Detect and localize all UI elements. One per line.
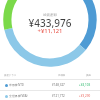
- staticText: ¥148,327: [52, 83, 65, 87]
- staticText: ¥433,976: [0, 16, 100, 30]
- staticText: 資産クラス: [4, 74, 17, 77]
- staticText: 米国株(VTI): [9, 83, 24, 87]
- staticText: +¥4,103: [79, 83, 91, 87]
- button[interactable]: 全世界株(VEA): [0, 91, 100, 100]
- staticText: ¥121,772: [52, 94, 65, 98]
- staticText: +¥11,121: [0, 27, 100, 35]
- staticText: +¥3,290: [79, 94, 91, 98]
- staticText: 総資産額: [0, 13, 100, 17]
- staticText: 全世界株(VEA): [9, 94, 28, 98]
- button[interactable]: 米国株(VTI): [0, 80, 100, 90]
- staticText: 評価額: [58, 74, 66, 77]
- staticText: 損益: [86, 74, 91, 77]
